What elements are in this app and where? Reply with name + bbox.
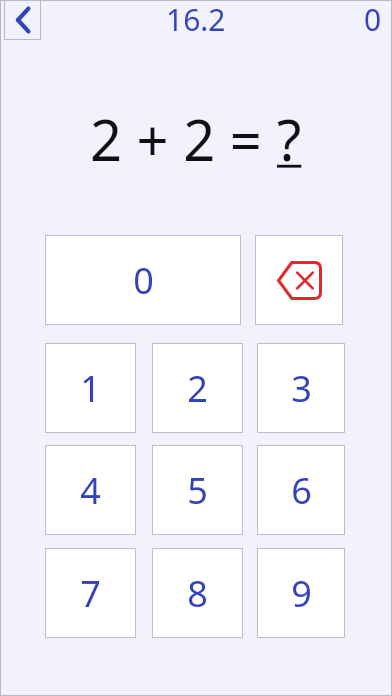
button[interactable]: 0 xyxy=(364,0,382,40)
button[interactable]: 9 xyxy=(257,548,345,638)
staticText: 5 xyxy=(187,466,208,515)
button[interactable]: 4 xyxy=(45,445,136,535)
button[interactable]: 7 xyxy=(45,548,136,638)
staticText: 2 xyxy=(187,364,208,413)
staticText: 0 xyxy=(133,256,154,305)
button[interactable]: 5 xyxy=(152,445,243,535)
staticText: 8 xyxy=(187,569,208,618)
button[interactable]: 8 xyxy=(152,548,243,638)
staticText: 4 xyxy=(80,466,101,515)
staticText: 3 xyxy=(291,364,312,413)
staticText: 2 + 2 = xyxy=(90,101,277,177)
button[interactable]: 0 xyxy=(45,235,241,325)
button[interactable]: 2 xyxy=(152,343,243,433)
staticText: 7 xyxy=(80,569,101,618)
button[interactable]: 1 xyxy=(45,343,136,433)
button[interactable]: Backspace xyxy=(255,235,343,325)
staticText: 9 xyxy=(291,569,312,618)
staticText: ? xyxy=(277,101,302,177)
button[interactable]: 3 xyxy=(257,343,345,433)
staticText: 6 xyxy=(291,466,312,515)
staticText: 16.2 xyxy=(166,0,226,40)
staticText: 1 xyxy=(80,364,101,413)
button[interactable]: Back xyxy=(4,0,41,40)
button[interactable]: 6 xyxy=(257,445,345,535)
